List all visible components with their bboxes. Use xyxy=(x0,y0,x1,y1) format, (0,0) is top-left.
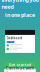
staticText: Dashboard xyxy=(7,36,23,40)
button[interactable]: Get started xyxy=(4,62,36,67)
staticText: Continue with Apple xyxy=(5,71,34,72)
staticText: Continue with Google xyxy=(5,65,34,72)
staticText: Everything you need xyxy=(1,0,38,10)
staticText: in one place xyxy=(5,11,35,18)
button[interactable]: Continue with Google xyxy=(4,68,36,72)
staticText: Get started xyxy=(8,62,31,67)
